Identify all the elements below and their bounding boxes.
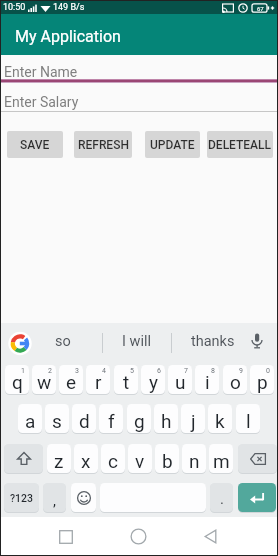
button[interactable]: a [18, 404, 42, 433]
staticText: d [79, 410, 90, 432]
staticText: 67 [257, 5, 264, 12]
button[interactable] [4, 444, 43, 473]
staticText: 1 [21, 367, 25, 375]
staticText: c [108, 450, 118, 472]
button[interactable] [238, 483, 276, 512]
button[interactable]: m [209, 444, 233, 473]
button[interactable] [125, 523, 152, 550]
button[interactable] [243, 323, 277, 357]
button[interactable]: i [195, 365, 219, 394]
staticText: 7 [184, 367, 188, 375]
button[interactable]: t [114, 365, 138, 394]
staticText: e [66, 371, 77, 393]
staticText: y [149, 371, 158, 393]
staticText: k [215, 410, 225, 432]
staticText: 9 [239, 367, 243, 375]
button[interactable] [52, 523, 79, 550]
button[interactable] [197, 523, 224, 550]
button[interactable]: z [47, 444, 71, 473]
staticText: 149 B/s [53, 2, 85, 13]
staticText: 3 [75, 367, 79, 375]
staticText: p [257, 371, 268, 393]
staticText: I will [122, 333, 152, 350]
button[interactable]: p [250, 365, 274, 394]
staticText: l [246, 410, 251, 432]
staticText: q [12, 371, 23, 393]
staticText: 2 [48, 367, 52, 375]
button[interactable]: f [99, 404, 123, 433]
staticText: so [55, 333, 71, 350]
staticText: 8 [211, 367, 215, 375]
button[interactable]: o [223, 365, 247, 394]
button[interactable]: v [128, 444, 152, 473]
staticText: o [230, 371, 241, 393]
staticText: w [37, 371, 52, 393]
staticText: i [205, 371, 210, 393]
button[interactable]: u [168, 365, 192, 394]
staticText: UPDATE [150, 138, 195, 152]
button[interactable] [238, 444, 277, 473]
button[interactable]: , [43, 483, 66, 512]
button[interactable]: d [72, 404, 96, 433]
staticText: z [54, 450, 64, 472]
staticText: 10:50 [3, 2, 26, 13]
button[interactable]: UPDATE [145, 131, 200, 158]
staticText: Enter Salary [4, 94, 79, 110]
staticText: m [213, 450, 230, 472]
staticText: b [162, 450, 173, 472]
button[interactable]: w [32, 365, 56, 394]
button[interactable]: r [86, 365, 110, 394]
staticText: ?123 [10, 492, 34, 504]
button[interactable]: I will [105, 327, 169, 356]
staticText: u [175, 371, 186, 393]
button[interactable]: thanks [176, 327, 249, 356]
button[interactable] [1, 55, 277, 83]
staticText: j [191, 410, 196, 432]
staticText: 0 [266, 367, 270, 375]
staticText: g [134, 410, 145, 432]
button[interactable]: l [236, 404, 260, 433]
button[interactable]: q [5, 365, 29, 394]
button[interactable]: c [101, 444, 125, 473]
button[interactable] [71, 483, 96, 512]
button[interactable]: y [141, 365, 165, 394]
staticText: thanks [191, 333, 235, 350]
staticText: My Application [15, 27, 121, 46]
staticText: 6 [157, 367, 161, 375]
button[interactable]: DELETEALL [207, 131, 273, 158]
staticText: v [135, 450, 145, 472]
staticText: r [95, 371, 102, 393]
button[interactable]: SAVE [7, 131, 63, 158]
button[interactable]: so [31, 327, 95, 356]
button[interactable]: j [181, 404, 205, 433]
button[interactable]: g [127, 404, 151, 433]
button[interactable]: h [154, 404, 178, 433]
staticText: x [81, 450, 91, 472]
staticText: h [161, 410, 172, 432]
button[interactable] [1, 85, 277, 111]
staticText: DELETEALL [208, 138, 272, 152]
staticText: t [123, 371, 130, 393]
button[interactable]: . [210, 483, 233, 512]
staticText: . [220, 490, 224, 508]
staticText: SAVE [20, 138, 50, 152]
staticText: , [53, 492, 56, 510]
button[interactable]: ?123 [4, 483, 39, 512]
button[interactable]: b [155, 444, 179, 473]
staticText: REFRESH [78, 138, 129, 152]
button[interactable]: s [45, 404, 69, 433]
button[interactable]: n [182, 444, 206, 473]
button[interactable]: k [208, 404, 232, 433]
staticText: 5 [130, 367, 134, 375]
staticText: f [108, 410, 115, 432]
staticText: Enter Name [4, 64, 78, 80]
button[interactable]: x [74, 444, 98, 473]
button[interactable]: REFRESH [74, 131, 132, 158]
staticText: s [52, 410, 62, 432]
staticText: n [189, 450, 200, 472]
button[interactable]: e [59, 365, 83, 394]
staticText: a [25, 410, 36, 432]
staticText: 4 [102, 367, 106, 375]
